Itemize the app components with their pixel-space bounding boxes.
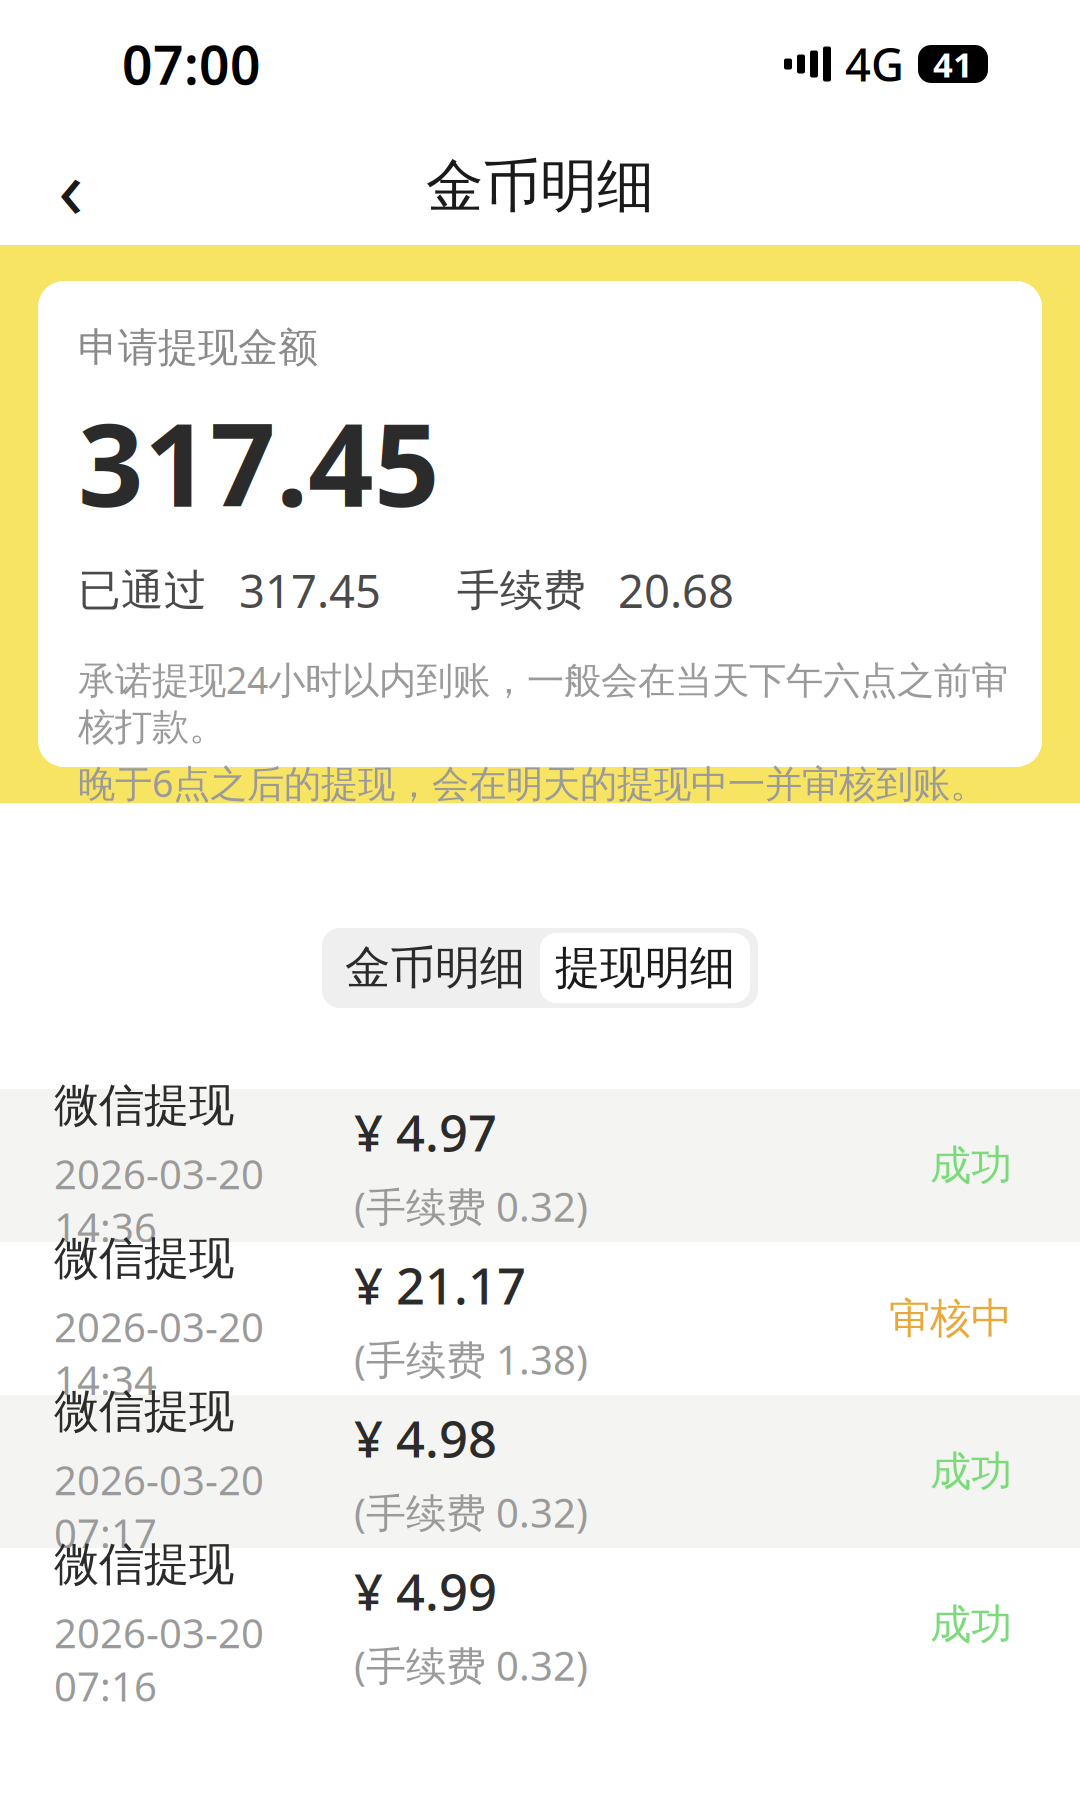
staticText: 申请提现金额 [78, 323, 318, 372]
staticText: 4G [845, 34, 904, 94]
staticText: 微信提现 [54, 1536, 234, 1592]
staticText: ¥ 4.97 [354, 1098, 497, 1166]
staticText: 手续费 [457, 564, 586, 617]
staticText: 2026-03-20 14:34 [54, 1300, 264, 1406]
button[interactable]: 微信提现 [0, 1089, 1080, 1242]
staticText: 成功 [930, 1599, 1012, 1650]
staticText: (手续费 0.32) [354, 1486, 588, 1539]
button[interactable]: 提现明细 [540, 933, 750, 1003]
staticText: 微信提现 [54, 1383, 234, 1439]
staticText: 审核中 [889, 1293, 1012, 1344]
staticText: 20.68 [618, 560, 734, 621]
button[interactable]: 金币明细 [330, 930, 540, 1006]
button[interactable]: 返回 [26, 141, 116, 231]
staticText: (手续费 1.38) [354, 1333, 588, 1386]
staticText: (手续费 0.32) [354, 1180, 588, 1233]
staticText: (手续费 0.32) [354, 1639, 588, 1692]
staticText: ¥ 21.17 [354, 1251, 526, 1319]
button[interactable]: 微信提现 [0, 1242, 1080, 1395]
staticText: 317.45 [239, 560, 381, 621]
staticText: 微信提现 [54, 1077, 234, 1133]
button[interactable]: 微信提现 [0, 1548, 1080, 1701]
staticText: 2026-03-20 14:36 [54, 1147, 264, 1253]
staticText: 2026-03-20 07:16 [54, 1606, 264, 1712]
staticText: 317.45 [78, 386, 440, 538]
staticText: 提现明细 [555, 940, 735, 996]
staticText: 已通过 [78, 564, 207, 617]
staticText: ¥ 4.99 [354, 1557, 497, 1625]
staticText: 07:00 [122, 29, 261, 99]
staticText: 41 [933, 41, 973, 87]
staticText: ¥ 4.98 [354, 1404, 497, 1472]
staticText: 承诺提现24小时以内到账，一般会在当天下午六点之前审核打款。 [78, 655, 1008, 750]
staticText: 成功 [930, 1446, 1012, 1497]
staticText: 微信提现 [54, 1230, 234, 1286]
staticText: 成功 [930, 1140, 1012, 1191]
staticText: 晚于6点之后的提现，会在明天的提现中一并审核到账。 [78, 758, 987, 808]
staticText: 2026-03-20 07:17 [54, 1453, 264, 1559]
button[interactable]: 微信提现 [0, 1395, 1080, 1548]
staticText: ‹ [58, 132, 84, 241]
staticText: 金币明细 [345, 940, 525, 996]
staticText: 金币明细 [426, 151, 654, 222]
